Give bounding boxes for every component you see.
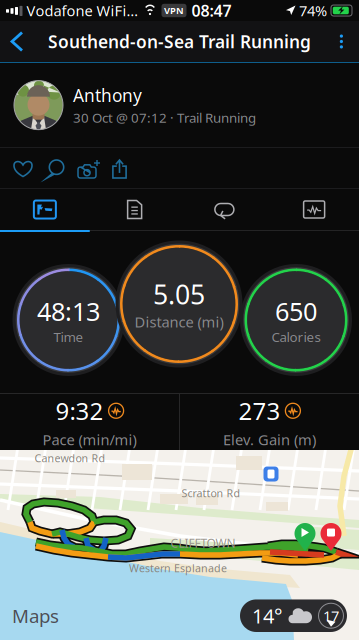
staticText: Vodafone WiFi…	[22, 1, 138, 20]
button[interactable]: Share	[104, 154, 134, 184]
staticText: 48:13	[37, 294, 100, 328]
staticText: 30 Oct @ 07:12 · Trail Running	[73, 109, 256, 126]
staticText: 5.05	[153, 277, 205, 312]
staticText: 273	[238, 395, 280, 427]
staticText: Time	[53, 328, 83, 346]
button[interactable]: Photos	[0, 189, 90, 229]
staticText: Maps	[12, 603, 59, 628]
button[interactable]: Comment	[40, 154, 70, 184]
button[interactable]: More options	[324, 21, 359, 62]
staticText: Calories	[271, 328, 320, 346]
staticText: Southend-on-Sea Trail Running	[48, 30, 311, 53]
staticText: Scratton Rd	[181, 486, 240, 500]
button[interactable]: Laps	[179, 189, 269, 229]
staticText: CLIFFTOWN	[170, 535, 235, 551]
staticText: Anthony	[73, 84, 142, 107]
button[interactable]: Analysis	[269, 189, 359, 229]
staticText: Western Esplanade	[129, 561, 227, 575]
staticText: Pace (min/mi)	[43, 430, 137, 449]
staticText: 74%	[299, 1, 327, 20]
staticText: 9:32	[56, 395, 104, 427]
staticText: VPN	[164, 4, 184, 17]
staticText: Canewdon Rd	[34, 451, 105, 465]
button[interactable]: Like	[8, 154, 38, 184]
button[interactable]: Add photo	[74, 154, 104, 184]
button[interactable]: Details	[90, 189, 180, 229]
staticText: 08:47	[191, 0, 231, 21]
staticText: Distance (mi)	[134, 312, 223, 331]
staticText: 14°	[252, 602, 283, 629]
button[interactable]: Back	[0, 21, 38, 62]
staticText: 17	[323, 606, 339, 625]
staticText: Elev. Gain (m)	[223, 430, 316, 449]
staticText: 650	[275, 294, 317, 328]
